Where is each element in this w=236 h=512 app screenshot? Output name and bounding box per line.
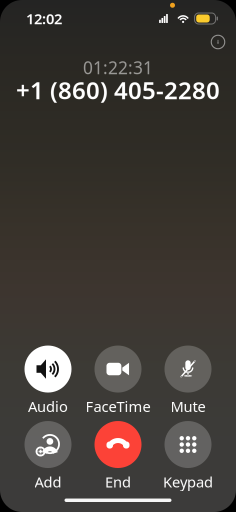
staticText: Mute <box>170 396 205 416</box>
staticText: 12:02 <box>26 9 62 28</box>
staticText: FaceTime <box>85 396 150 416</box>
button[interactable]: Call info <box>204 28 232 56</box>
staticText: Audio <box>28 396 68 416</box>
button[interactable]: Add <box>13 421 83 491</box>
button[interactable]: Audio <box>13 345 83 416</box>
button[interactable]: Keypad <box>153 421 223 491</box>
staticText: End <box>105 472 131 491</box>
button[interactable]: FaceTime <box>83 345 153 416</box>
staticText: Add <box>34 472 61 491</box>
button[interactable]: End <box>83 421 153 491</box>
staticText: Keypad <box>163 472 213 491</box>
staticText: +1 (860) 405-2280 <box>16 74 220 106</box>
staticText: 01:22:31 <box>83 56 153 79</box>
button[interactable]: Mute <box>153 345 223 416</box>
